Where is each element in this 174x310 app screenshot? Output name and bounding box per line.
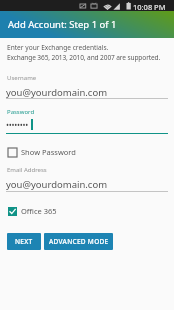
staticText: •••••••• bbox=[6, 119, 29, 130]
button[interactable]: ADVANCED MODE bbox=[44, 233, 113, 250]
button[interactable]: Show Password bbox=[8, 147, 76, 157]
staticText: Username bbox=[7, 74, 37, 82]
staticText: Password bbox=[7, 108, 35, 116]
staticText: Enter your Exchange credentials. bbox=[7, 43, 109, 52]
staticText: NEXT bbox=[15, 237, 33, 246]
staticText: Show Password bbox=[21, 147, 76, 157]
staticText: 10:08 PM bbox=[133, 2, 166, 12]
staticText: Office 365 bbox=[21, 206, 57, 216]
button[interactable]: NEXT bbox=[7, 233, 41, 250]
staticText: you@yourdomain.com bbox=[6, 178, 108, 191]
staticText: Exchange 365, 2013, 2010, and 2007 are s… bbox=[7, 53, 161, 62]
staticText: Add Account: Step 1 of 1 bbox=[8, 18, 117, 31]
button[interactable]: Office 365 bbox=[8, 206, 57, 216]
staticText: ADVANCED MODE bbox=[49, 237, 109, 246]
staticText: Email Address bbox=[7, 166, 47, 174]
staticText: you@yourdomain.com bbox=[6, 86, 108, 99]
